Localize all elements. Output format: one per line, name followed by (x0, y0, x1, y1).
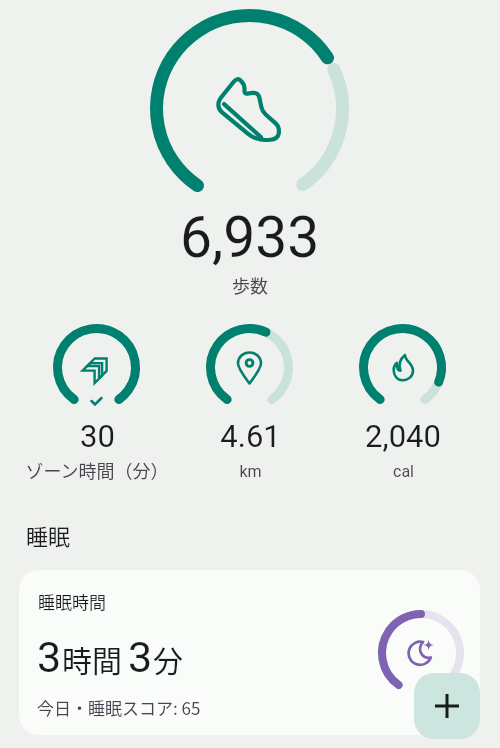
staticText: 睡眠時間 (38, 589, 106, 614)
staticText: km (239, 462, 262, 481)
staticText: 2,040 (365, 418, 441, 454)
staticText: cal (393, 462, 414, 481)
staticText: 時間 (62, 637, 122, 680)
staticText: 30 (80, 418, 115, 454)
staticText: ゾーン時間（分） (25, 457, 169, 483)
staticText: 4.61 (220, 418, 281, 454)
staticText: 6,933 (180, 204, 320, 271)
staticText: 歩数 (232, 272, 268, 298)
button[interactable]: 睡眠時間 (19, 570, 480, 735)
staticText: 分 (153, 637, 183, 680)
staticText: 今日・睡眠スコア: 65 (37, 695, 201, 720)
button[interactable]: Add (414, 673, 480, 739)
staticText: 3 (37, 632, 62, 682)
staticText: 睡眠 (26, 519, 71, 551)
staticText: 3 (128, 632, 153, 682)
